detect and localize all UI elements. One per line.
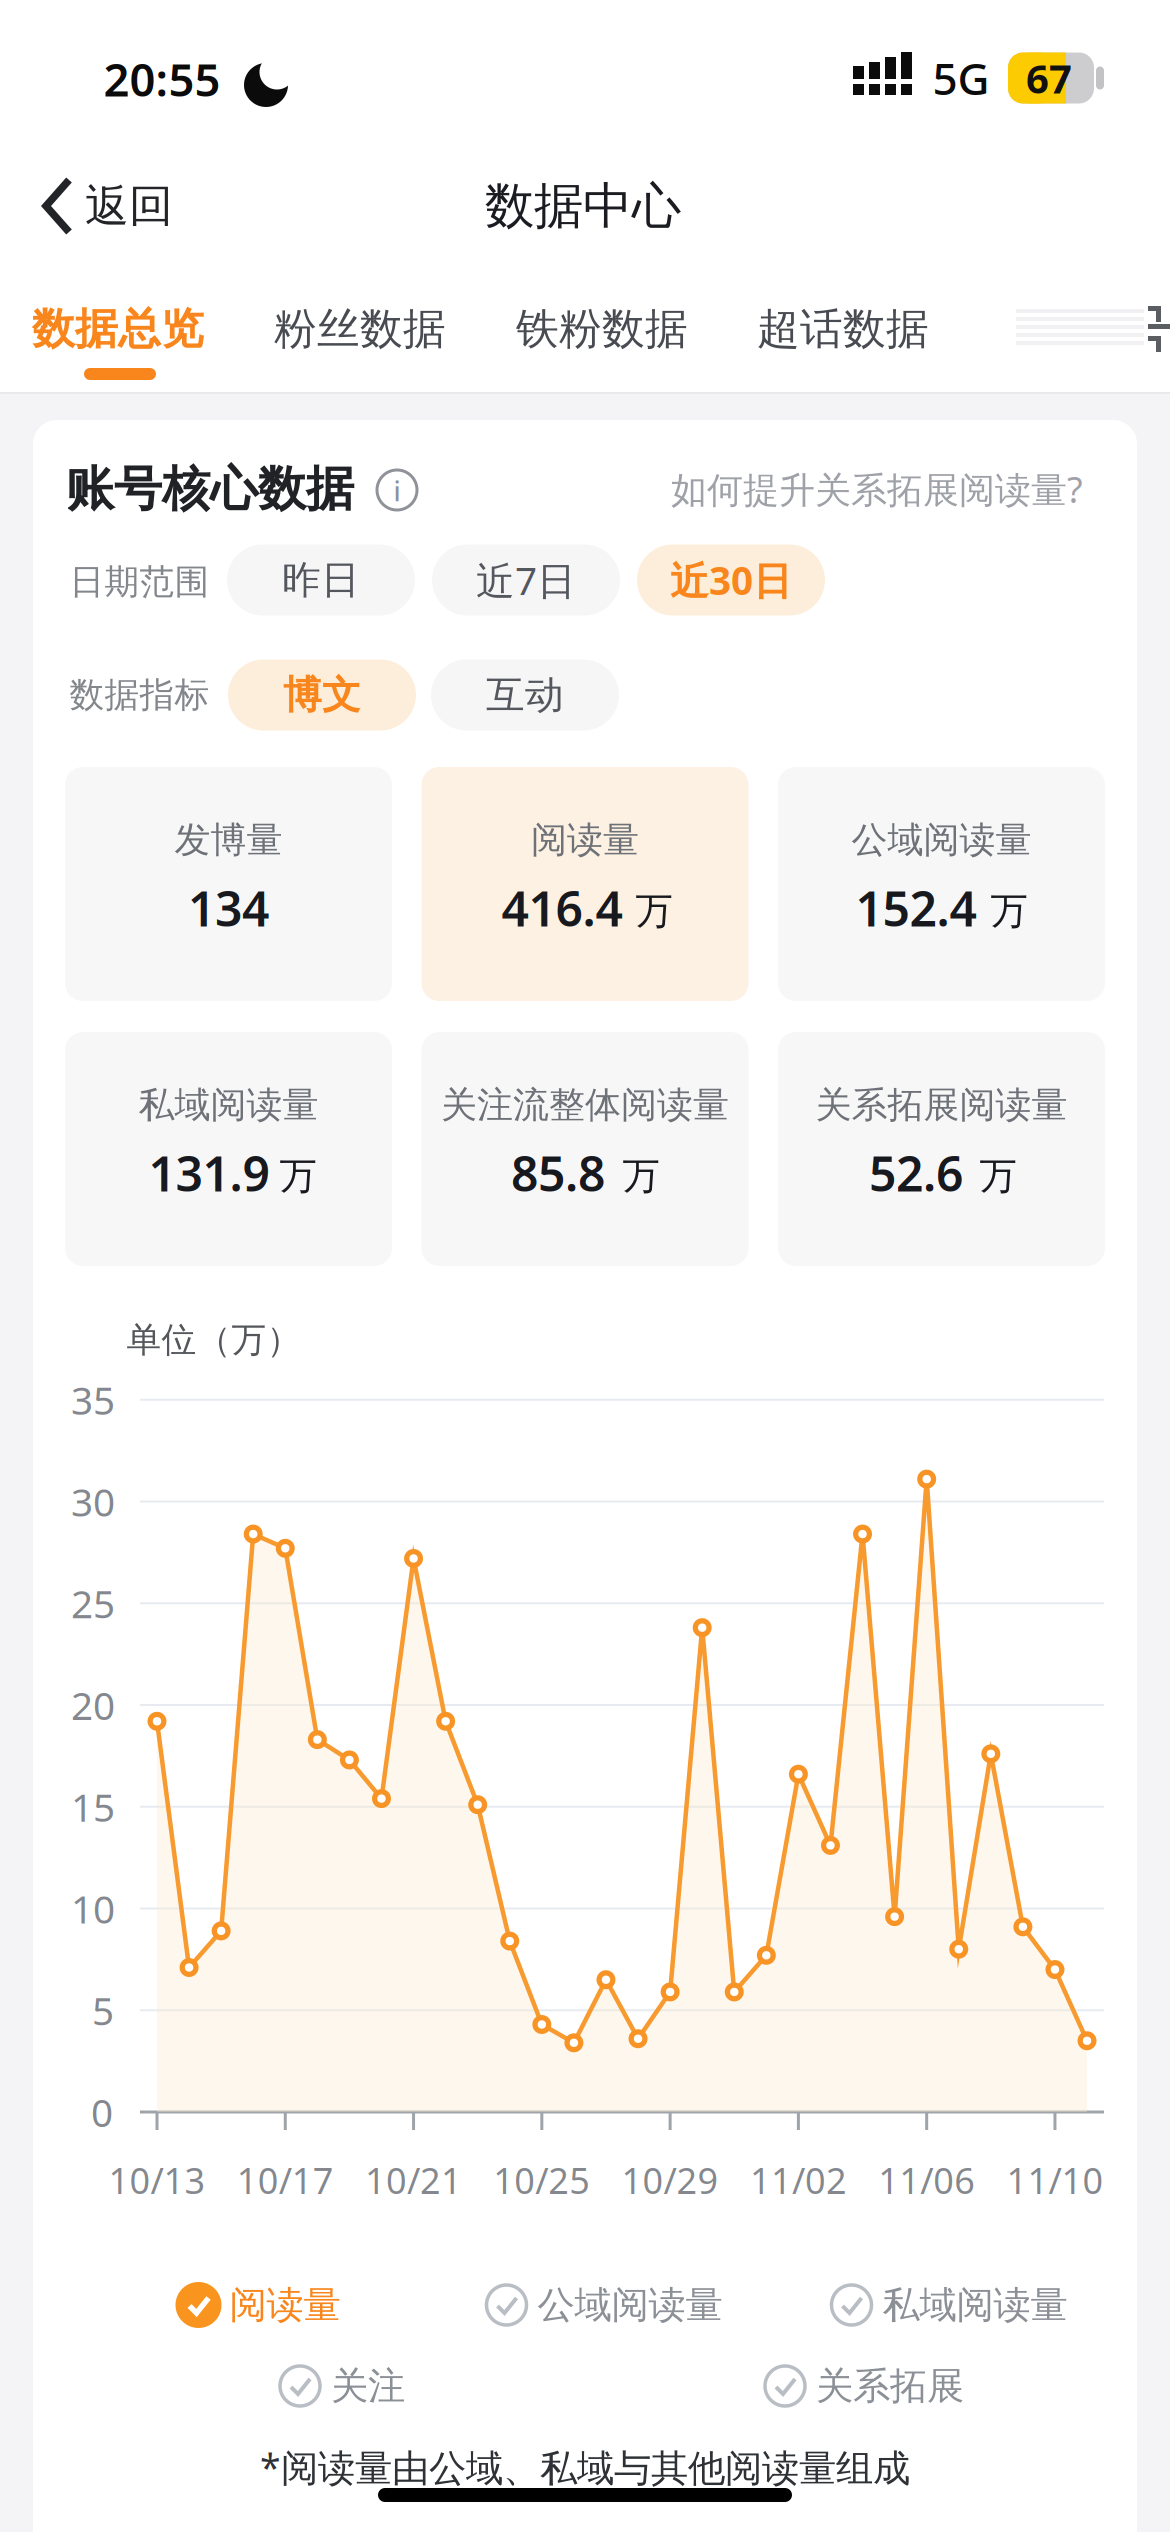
staticText: 35 [71, 1374, 115, 1425]
staticText: 阅读量 [229, 2282, 340, 2328]
button[interactable]: 博文 [228, 659, 416, 730]
button[interactable]: 说明 [375, 468, 419, 512]
staticText: 私域阅读量 [882, 2282, 1067, 2328]
staticText: 152.4 [855, 876, 976, 940]
staticText: 11/10 [1006, 2156, 1103, 2204]
button[interactable]: 阅读量 [421, 767, 748, 1001]
staticText: 发博量 [174, 818, 282, 862]
staticText: 私域阅读量 [138, 1083, 318, 1127]
button[interactable]: 公域阅读量 [483, 2282, 722, 2328]
staticText: 公域阅读量 [537, 2282, 722, 2328]
button[interactable]: 如何提升关系拓展阅读量? [671, 465, 1083, 513]
staticText: 10/29 [622, 2156, 719, 2204]
button[interactable]: 阅读量 [175, 2282, 340, 2328]
staticText: 互动 [486, 671, 564, 719]
staticText: 416.4 [501, 876, 622, 940]
staticText: 超话数据 [757, 303, 929, 355]
staticText: 10/25 [493, 2156, 590, 2204]
staticText: 5 [92, 1985, 114, 2036]
staticText: 关注 [331, 2363, 405, 2409]
staticText: 博文 [283, 671, 361, 719]
staticText: 15 [71, 1781, 115, 1832]
staticText: 近7日 [476, 554, 576, 606]
staticText: 134 [188, 876, 269, 940]
staticText: 关系拓展阅读量 [815, 1083, 1067, 1127]
button[interactable]: 私域阅读量 [65, 1032, 392, 1266]
button[interactable]: 近30日 [637, 544, 825, 615]
staticText: 10 [71, 1883, 115, 1934]
button[interactable]: 私域阅读量 [828, 2282, 1067, 2328]
staticText: 131.9 [148, 1141, 269, 1205]
button[interactable]: 关注流整体阅读量 [421, 1032, 748, 1266]
staticText: 万 [622, 1153, 659, 1199]
staticText: 铁粉数据 [516, 303, 688, 355]
button[interactable]: 超话数据 [757, 303, 929, 355]
staticText: 关系拓展 [816, 2363, 964, 2409]
staticText: 25 [71, 1578, 115, 1629]
staticText: 返回 [85, 179, 173, 233]
staticText: 数据中心 [485, 176, 681, 236]
staticText: 日期范围 [69, 561, 209, 603]
staticText: *阅读量由公域、私域与其他阅读量组成 [260, 2442, 910, 2492]
button[interactable]: 关系拓展阅读量 [778, 1032, 1105, 1266]
button[interactable]: 粉丝数据 [274, 303, 446, 355]
staticText: 10/21 [365, 2156, 462, 2204]
staticText: 单位（万） [126, 1319, 301, 1361]
button[interactable]: 互动 [431, 659, 619, 730]
button[interactable]: 关注 [277, 2363, 405, 2409]
staticText: 20 [71, 1679, 115, 1731]
staticText: 11/02 [750, 2156, 847, 2204]
staticText: 粉丝数据 [274, 303, 446, 355]
staticText: 如何提升关系拓展阅读量? [671, 465, 1083, 513]
staticText: 30 [71, 1476, 115, 1527]
button[interactable]: 公域阅读量 [778, 767, 1105, 1001]
button[interactable]: 数据总览 [32, 303, 204, 355]
button[interactable]: 昨日 [227, 544, 415, 615]
staticText: 公域阅读量 [851, 818, 1031, 862]
staticText: 11/06 [878, 2156, 975, 2204]
staticText: 20:55 [103, 49, 220, 109]
staticText: 昨日 [282, 556, 360, 604]
button[interactable]: 返回 [43, 178, 173, 234]
staticText: i [393, 473, 400, 509]
staticText: 万 [979, 1153, 1016, 1199]
staticText: 10/17 [237, 2156, 334, 2204]
staticText: 85.8 [511, 1141, 605, 1205]
staticText: 近30日 [670, 554, 792, 606]
staticText: 67 [1026, 51, 1072, 104]
button[interactable]: 关系拓展 [762, 2363, 964, 2409]
staticText: 0 [91, 2086, 113, 2138]
staticText: 万 [279, 1153, 316, 1199]
button[interactable]: 近7日 [432, 544, 620, 615]
staticText: 10/13 [108, 2156, 205, 2204]
staticText: 52.6 [869, 1141, 963, 1205]
staticText: 关注流整体阅读量 [441, 1083, 729, 1127]
button[interactable]: 铁粉数据 [516, 303, 688, 355]
staticText: 账号核心数据 [66, 459, 354, 518]
staticText: 万 [635, 888, 672, 934]
staticText: 5G [932, 49, 989, 107]
staticText: 数据总览 [32, 303, 204, 355]
staticText: 数据指标 [69, 674, 209, 716]
staticText: 万 [990, 888, 1027, 934]
staticText: 阅读量 [531, 818, 639, 862]
button[interactable]: 发博量 [65, 767, 392, 1001]
